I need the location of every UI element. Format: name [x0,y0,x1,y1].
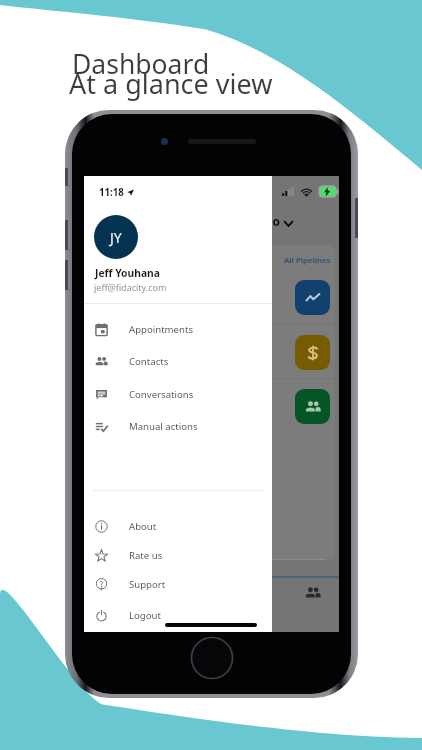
staticText: Rate us [129,549,163,562]
staticText: All Pipelines [284,255,331,265]
button[interactable]: Pipeline [295,280,330,315]
staticText: Dashboard [72,46,210,82]
button[interactable]: Rate us [84,540,272,570]
button[interactable]: Conversations [84,379,272,409]
staticText: Manual actions [129,420,198,433]
other: Home [189,635,235,681]
button[interactable]: Pipeline [295,389,330,424]
staticText: Support [129,578,166,591]
button[interactable]: About [84,511,272,541]
staticText: JY [110,228,122,247]
staticText: jeff@fidacity.com [94,281,167,293]
staticText: Hello [249,213,280,229]
button[interactable]: Support [84,569,272,599]
button[interactable]: Contacts [84,346,272,376]
button[interactable]: Appointments [84,314,272,344]
button[interactable]: Profile [94,215,138,259]
button[interactable]: Manual actions [84,411,272,441]
staticText: Appointments [129,323,193,336]
staticText: Contacts [129,355,169,368]
staticText: About [129,520,157,533]
staticText: At a glance view [69,65,273,102]
button[interactable]: Pipeline [295,335,330,370]
staticText: Jeff Youhana [95,266,160,280]
staticText: 11:18 [99,186,124,199]
staticText: Conversations [129,388,194,401]
staticText: Logout [129,609,161,622]
button[interactable]: Logout [84,600,272,630]
